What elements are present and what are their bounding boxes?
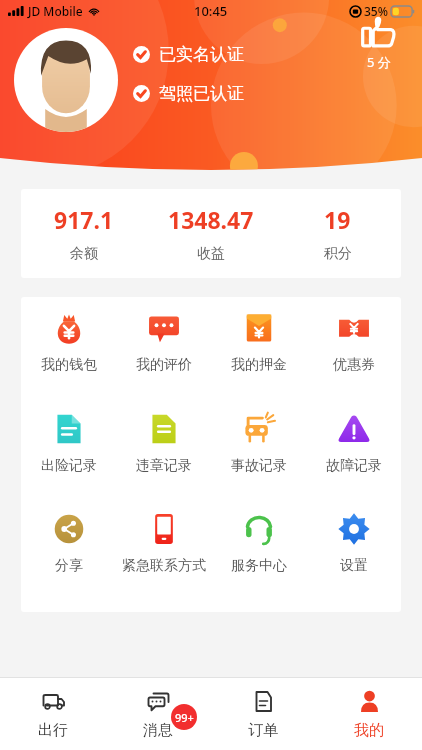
staticText: 5 分	[367, 53, 391, 71]
button[interactable]: 事故记录	[211, 412, 306, 512]
button[interactable]: 服务中心	[211, 512, 306, 612]
staticText: 驾照已认证	[159, 83, 244, 104]
button[interactable]: 出险记录	[21, 412, 116, 512]
staticText: 服务中心	[231, 557, 287, 575]
staticText: 故障记录	[326, 457, 382, 475]
staticText: 我的押金	[231, 356, 287, 374]
button[interactable]: 设置	[306, 512, 401, 612]
button[interactable]: 违章记录	[116, 412, 211, 512]
button[interactable]: 我的评价	[116, 311, 211, 412]
staticText: 35%	[364, 3, 388, 19]
staticText: 违章记录	[136, 457, 192, 475]
button[interactable]: Messages	[105, 678, 210, 750]
button[interactable]: 故障记录	[306, 412, 401, 512]
button[interactable]: 1348.47	[147, 189, 274, 278]
staticText: 紧急联系方式	[122, 557, 206, 575]
button[interactable]: 917.1	[21, 189, 147, 278]
button[interactable]: 我的押金	[211, 311, 306, 412]
staticText: 优惠券	[333, 356, 375, 374]
button[interactable]: Rating score 5	[362, 16, 396, 71]
staticText: 917.1	[54, 204, 114, 235]
button[interactable]: 分享	[21, 512, 116, 612]
staticText: JD Mobile	[28, 3, 83, 19]
staticText: 99+	[175, 710, 194, 725]
button[interactable]: Orders	[210, 678, 316, 750]
button[interactable]: Profile photo	[14, 28, 118, 132]
staticText: 10:45	[194, 2, 228, 20]
staticText: 已实名认证	[159, 44, 244, 65]
staticText: 订单	[248, 721, 278, 740]
staticText: 事故记录	[231, 457, 287, 475]
button[interactable]: 19	[274, 189, 401, 278]
staticText: 我的评价	[136, 356, 192, 374]
button[interactable]: 优惠券	[306, 311, 401, 412]
staticText: 分享	[55, 557, 83, 575]
staticText: 积分	[324, 245, 352, 263]
button[interactable]: Profile	[316, 678, 422, 750]
button[interactable]: Travel	[0, 678, 105, 750]
button[interactable]: 紧急联系方式	[116, 512, 211, 612]
staticText: 我的	[354, 721, 384, 740]
staticText: 1348.47	[168, 204, 254, 235]
staticText: 我的钱包	[41, 356, 97, 374]
staticText: 收益	[197, 245, 225, 263]
staticText: 设置	[340, 557, 368, 575]
staticText: 余额	[70, 245, 98, 263]
staticText: 19	[324, 204, 351, 235]
staticText: 消息	[143, 721, 173, 740]
button[interactable]: 我的钱包	[21, 311, 116, 412]
staticText: 出行	[38, 721, 68, 740]
staticText: 出险记录	[41, 457, 97, 475]
